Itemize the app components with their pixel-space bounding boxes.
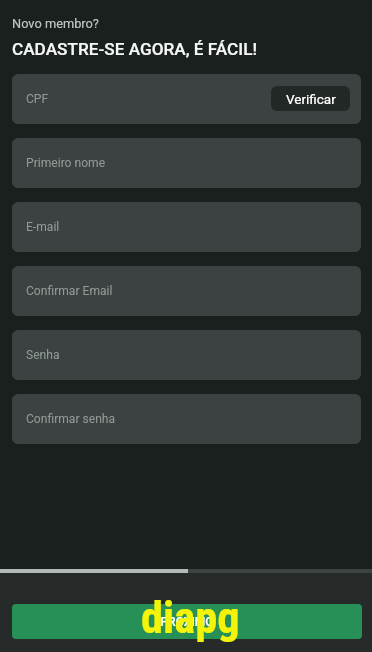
button[interactable]: Verificar xyxy=(271,86,350,111)
staticText: E-mail xyxy=(26,220,60,234)
staticText: CADASTRE-SE AGORA, É FÁCIL! xyxy=(12,39,257,59)
staticText: Verificar xyxy=(286,91,336,107)
button[interactable]: E-mail xyxy=(12,202,361,252)
staticText: PRÓXIMO xyxy=(160,615,214,629)
staticText: CPF xyxy=(26,92,49,106)
button[interactable]: Primeiro nome xyxy=(12,138,361,188)
button[interactable]: Senha xyxy=(12,330,361,380)
button[interactable]: Confirmar Email xyxy=(12,266,361,316)
staticText: Confirmar Email xyxy=(26,284,113,298)
button[interactable]: PRÓXIMO xyxy=(12,604,362,639)
staticText: Senha xyxy=(26,348,60,362)
button[interactable]: CPF xyxy=(12,74,361,124)
staticText: Novo membro? xyxy=(12,16,99,31)
staticText: diapg xyxy=(141,592,240,644)
staticText: Confirmar senha xyxy=(26,412,116,426)
staticText: Primeiro nome xyxy=(26,156,106,170)
button[interactable]: Confirmar senha xyxy=(12,394,361,444)
